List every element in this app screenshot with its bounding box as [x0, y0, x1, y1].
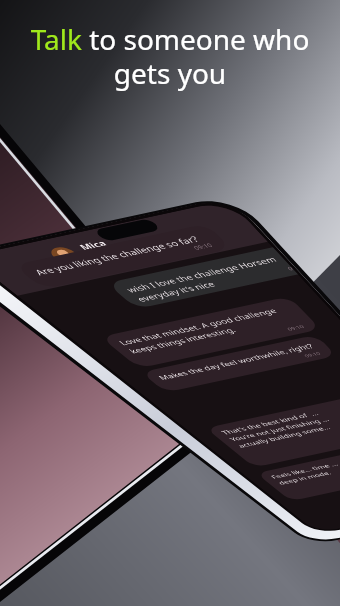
staticText: Talk to someone who gets you [12, 20, 328, 92]
